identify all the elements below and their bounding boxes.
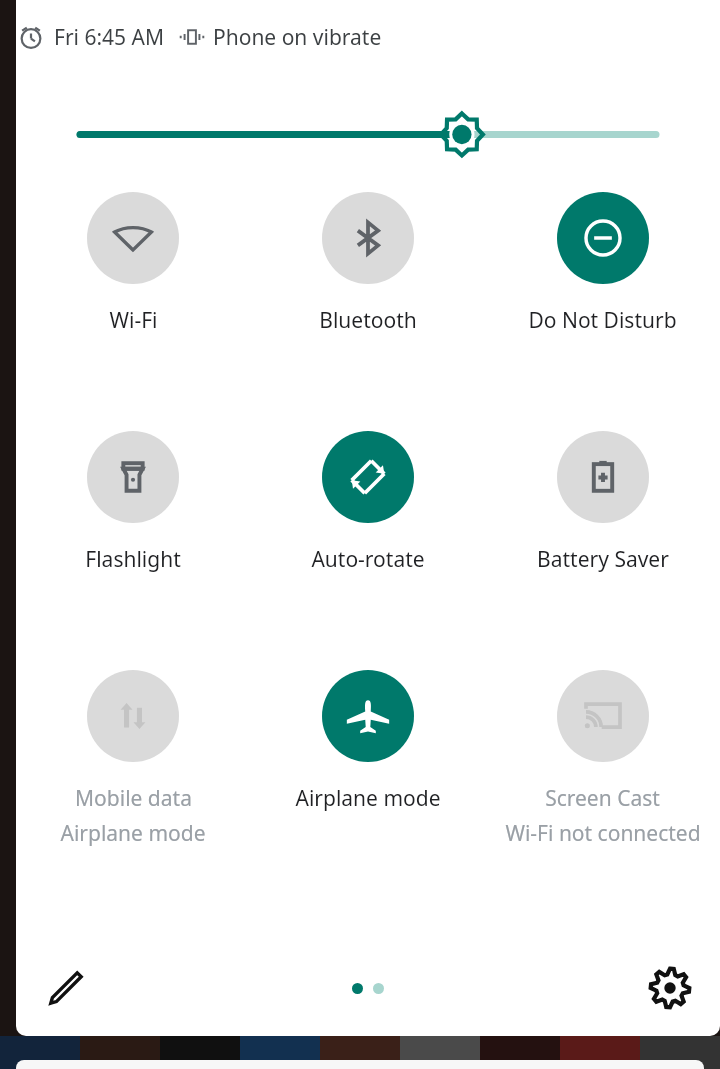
staticText: Fri 6:45 AM xyxy=(54,23,165,52)
staticText: Battery Saver xyxy=(537,545,669,574)
staticText: Auto-rotate xyxy=(311,545,425,574)
button[interactable]: Airplane mode xyxy=(250,670,485,813)
staticText: Flashlight xyxy=(85,545,181,574)
button[interactable]: Auto-rotate xyxy=(250,431,485,574)
staticText: Wi-Fi not connected xyxy=(505,819,701,848)
staticText: Screen Cast xyxy=(545,784,660,813)
button[interactable]: Screen Cast xyxy=(485,670,720,848)
staticText: Phone on vibrate xyxy=(213,23,382,52)
staticText: Mobile data xyxy=(75,784,192,813)
button[interactable]: Bluetooth xyxy=(250,192,485,335)
staticText: Do Not Disturb xyxy=(528,306,677,335)
button[interactable]: Mobile data xyxy=(16,670,250,848)
button[interactable]: Edit xyxy=(38,960,94,1016)
button[interactable]: Flashlight xyxy=(16,431,250,574)
button[interactable]: Battery Saver xyxy=(485,431,720,574)
staticText: Airplane mode xyxy=(295,784,441,813)
staticText: Airplane mode xyxy=(60,819,206,848)
staticText: Wi-Fi xyxy=(109,306,158,335)
button[interactable]: Wi-Fi xyxy=(16,192,250,335)
button[interactable]: Do Not Disturb xyxy=(485,192,720,335)
button[interactable]: Brightness xyxy=(16,74,720,158)
button[interactable]: Settings xyxy=(642,960,698,1016)
staticText: Bluetooth xyxy=(319,306,417,335)
